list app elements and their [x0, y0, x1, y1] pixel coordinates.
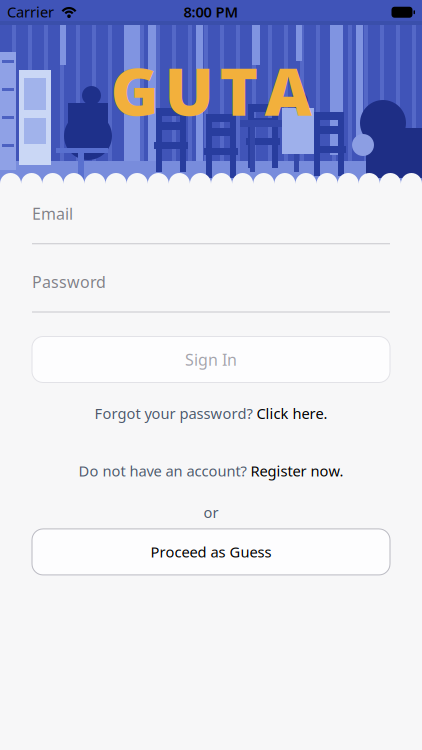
button[interactable]: Email	[32, 203, 390, 244]
staticText: Email	[32, 203, 73, 224]
staticText: G	[110, 47, 158, 134]
staticText: A	[264, 47, 311, 134]
button[interactable]: Proceed as Guess	[32, 529, 390, 575]
staticText: Do not have an account?	[78, 461, 250, 480]
staticText: Carrier	[7, 2, 54, 21]
staticText: Password	[32, 271, 106, 292]
staticText: T	[219, 47, 258, 134]
button[interactable]: Sign In	[32, 336, 390, 382]
staticText: or	[203, 502, 218, 522]
button[interactable]: Password	[32, 271, 390, 312]
button[interactable]: Register now.	[250, 461, 343, 480]
staticText: Proceed as Guess	[150, 542, 271, 562]
button[interactable]: Click here.	[256, 403, 327, 423]
staticText: Forgot your password?	[94, 403, 256, 423]
staticText: Register now.	[250, 461, 343, 480]
staticText: U	[164, 47, 213, 134]
staticText: Sign In	[185, 349, 237, 370]
staticText: Click here.	[256, 403, 327, 423]
staticText: 8:00 PM	[183, 2, 238, 21]
